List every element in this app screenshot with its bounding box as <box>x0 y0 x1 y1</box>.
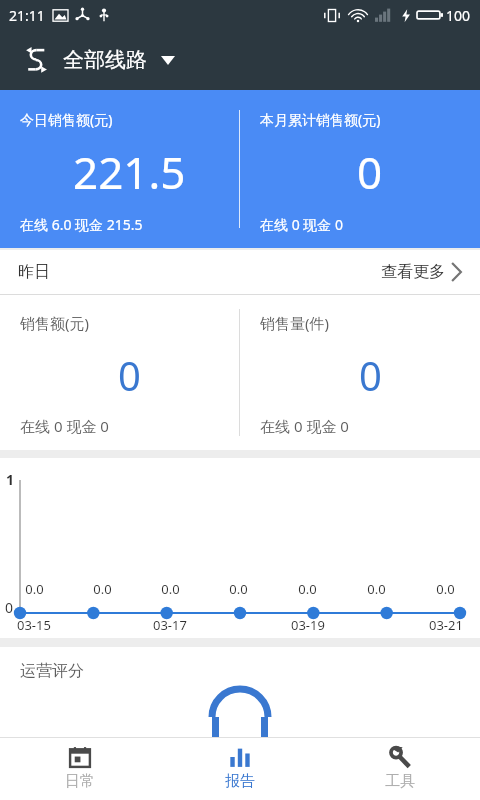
staticText: 0.0 <box>229 580 248 598</box>
button[interactable]: 昨日 <box>0 250 480 294</box>
staticText: 全部线路 <box>63 47 147 73</box>
staticText: 昨日 <box>18 262 50 282</box>
staticText: 运营评分 <box>20 661 84 681</box>
staticText: 0.0 <box>93 580 112 598</box>
staticText: 日常 <box>65 772 95 791</box>
staticText: 在线 6.0 现金 215.5 <box>20 215 143 234</box>
staticText: 100 <box>446 6 471 25</box>
staticText: 查看更多 <box>381 262 445 282</box>
staticText: 销售额(元) <box>20 313 90 333</box>
button[interactable]: 工具 <box>320 738 480 800</box>
button[interactable]: 全部线路 <box>63 47 175 73</box>
staticText: 0 <box>5 598 14 617</box>
staticText: 本月累计销售额(元) <box>260 110 381 129</box>
staticText: 0.0 <box>367 580 386 598</box>
button[interactable]: 销售额(元) <box>0 295 239 450</box>
staticText: 在线 0 现金 0 <box>20 416 109 436</box>
button[interactable]: 今日销售额(元) <box>0 90 239 248</box>
staticText: 03-19 <box>291 616 325 634</box>
staticText: 销售量(件) <box>260 313 330 333</box>
staticText: 0.0 <box>436 580 455 598</box>
staticText: 0.0 <box>161 580 180 598</box>
staticText: 1 <box>6 470 15 489</box>
staticText: 0.0 <box>25 580 44 598</box>
staticText: 工具 <box>385 772 415 791</box>
staticText: 0 <box>359 348 382 402</box>
button[interactable]: 本月累计销售额(元) <box>240 90 480 248</box>
button[interactable]: 销售量(件) <box>240 295 480 450</box>
staticText: 03-17 <box>153 616 187 634</box>
staticText: 0 <box>118 348 141 402</box>
staticText: 今日销售额(元) <box>20 110 113 129</box>
staticText: 0.0 <box>298 580 317 598</box>
staticText: 在线 0 现金 0 <box>260 215 343 234</box>
staticText: 0 <box>357 142 383 202</box>
staticText: 03-15 <box>17 616 51 634</box>
button[interactable]: 报告 <box>160 738 320 800</box>
staticText: 报告 <box>225 772 255 791</box>
staticText: 03-21 <box>429 616 463 634</box>
staticText: 21:11 <box>9 6 45 25</box>
button[interactable]: 日常 <box>0 738 160 800</box>
staticText: 221.5 <box>73 142 186 202</box>
staticText: 在线 0 现金 0 <box>260 416 349 436</box>
button[interactable]: 切换线路 <box>19 43 53 77</box>
